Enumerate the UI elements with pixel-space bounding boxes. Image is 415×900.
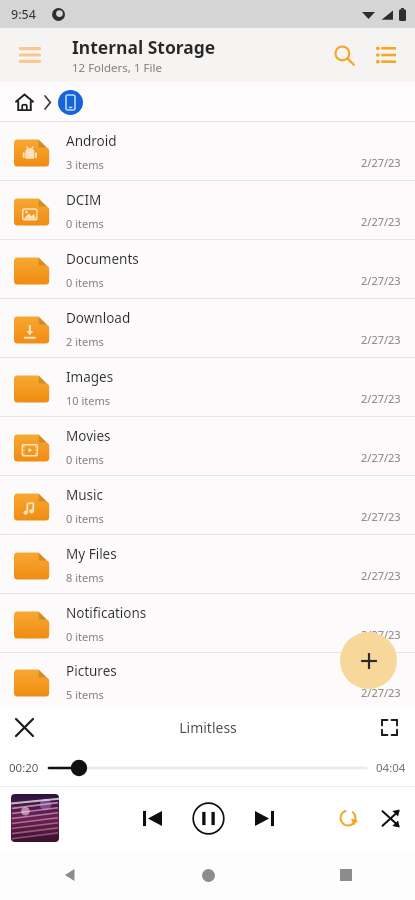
staticText: 0 items — [66, 629, 104, 644]
staticText: 04:04 — [376, 760, 406, 776]
button[interactable]: Pictures — [0, 653, 415, 711]
button[interactable]: Shuffle — [369, 797, 411, 839]
staticText: Images — [66, 368, 114, 386]
staticText: 2/27/23 — [361, 685, 401, 700]
button[interactable]: Next — [242, 796, 286, 840]
staticText: Download — [66, 309, 131, 327]
staticText: 0 items — [66, 216, 104, 231]
staticText: My Files — [66, 545, 117, 563]
button[interactable]: Android — [0, 122, 415, 181]
staticText: 2/27/23 — [361, 568, 401, 583]
button[interactable]: Search — [323, 34, 365, 76]
staticText: 2 items — [66, 334, 104, 349]
button[interactable]: Album art — [10, 793, 60, 843]
button[interactable]: Repeat — [327, 797, 369, 839]
staticText: Limitless — [179, 718, 237, 737]
button[interactable]: Home — [9, 87, 39, 117]
staticText: Notifications — [66, 604, 147, 622]
button[interactable]: Documents — [0, 240, 415, 299]
staticText: 2/27/23 — [361, 214, 401, 229]
staticText: 10 items — [66, 393, 111, 408]
staticText: Android — [66, 132, 117, 150]
button[interactable]: Back — [0, 850, 139, 900]
staticText: 00:20 — [9, 760, 39, 776]
button[interactable]: Seek — [49, 757, 366, 779]
button[interactable]: Music — [0, 476, 415, 535]
staticText: DCIM — [66, 191, 102, 209]
button[interactable]: DCIM — [0, 181, 415, 240]
staticText: 2/27/23 — [361, 391, 401, 406]
staticText: 0 items — [66, 275, 104, 290]
staticText: 2/27/23 — [361, 155, 401, 170]
staticText: 2/27/23 — [361, 332, 401, 347]
button[interactable]: Previous — [130, 796, 174, 840]
staticText: 5 items — [66, 687, 104, 702]
staticText: 9:54 — [11, 6, 36, 23]
staticText: 12 Folders, 1 File — [72, 60, 162, 76]
button[interactable]: View mode — [365, 34, 407, 76]
button[interactable]: Images — [0, 358, 415, 417]
button[interactable]: Internal storage — [55, 87, 85, 117]
button[interactable]: Fullscreen — [369, 707, 409, 747]
button[interactable]: Movies — [0, 417, 415, 476]
staticText: 2/27/23 — [361, 627, 401, 642]
button[interactable]: Pause — [186, 796, 230, 840]
staticText: Internal Storage — [72, 35, 216, 59]
button[interactable]: Notifications — [0, 594, 415, 653]
staticText: 0 items — [66, 452, 104, 467]
button[interactable]: Close player — [4, 707, 44, 747]
staticText: 2/27/23 — [361, 450, 401, 465]
button[interactable]: My Files — [0, 535, 415, 594]
button[interactable]: Add — [340, 632, 397, 689]
button[interactable]: Download — [0, 299, 415, 358]
button[interactable]: Recents — [277, 850, 415, 900]
staticText: Music — [66, 486, 104, 504]
staticText: 2/27/23 — [361, 509, 401, 524]
staticText: 3 items — [66, 157, 104, 172]
staticText: 0 items — [66, 511, 104, 526]
staticText: Pictures — [66, 662, 117, 680]
staticText: 2/27/23 — [361, 273, 401, 288]
staticText: Documents — [66, 250, 139, 268]
button[interactable]: Home — [139, 850, 277, 900]
button[interactable]: Menu — [10, 35, 50, 75]
staticText: 8 items — [66, 570, 104, 585]
staticText: Movies — [66, 427, 111, 445]
